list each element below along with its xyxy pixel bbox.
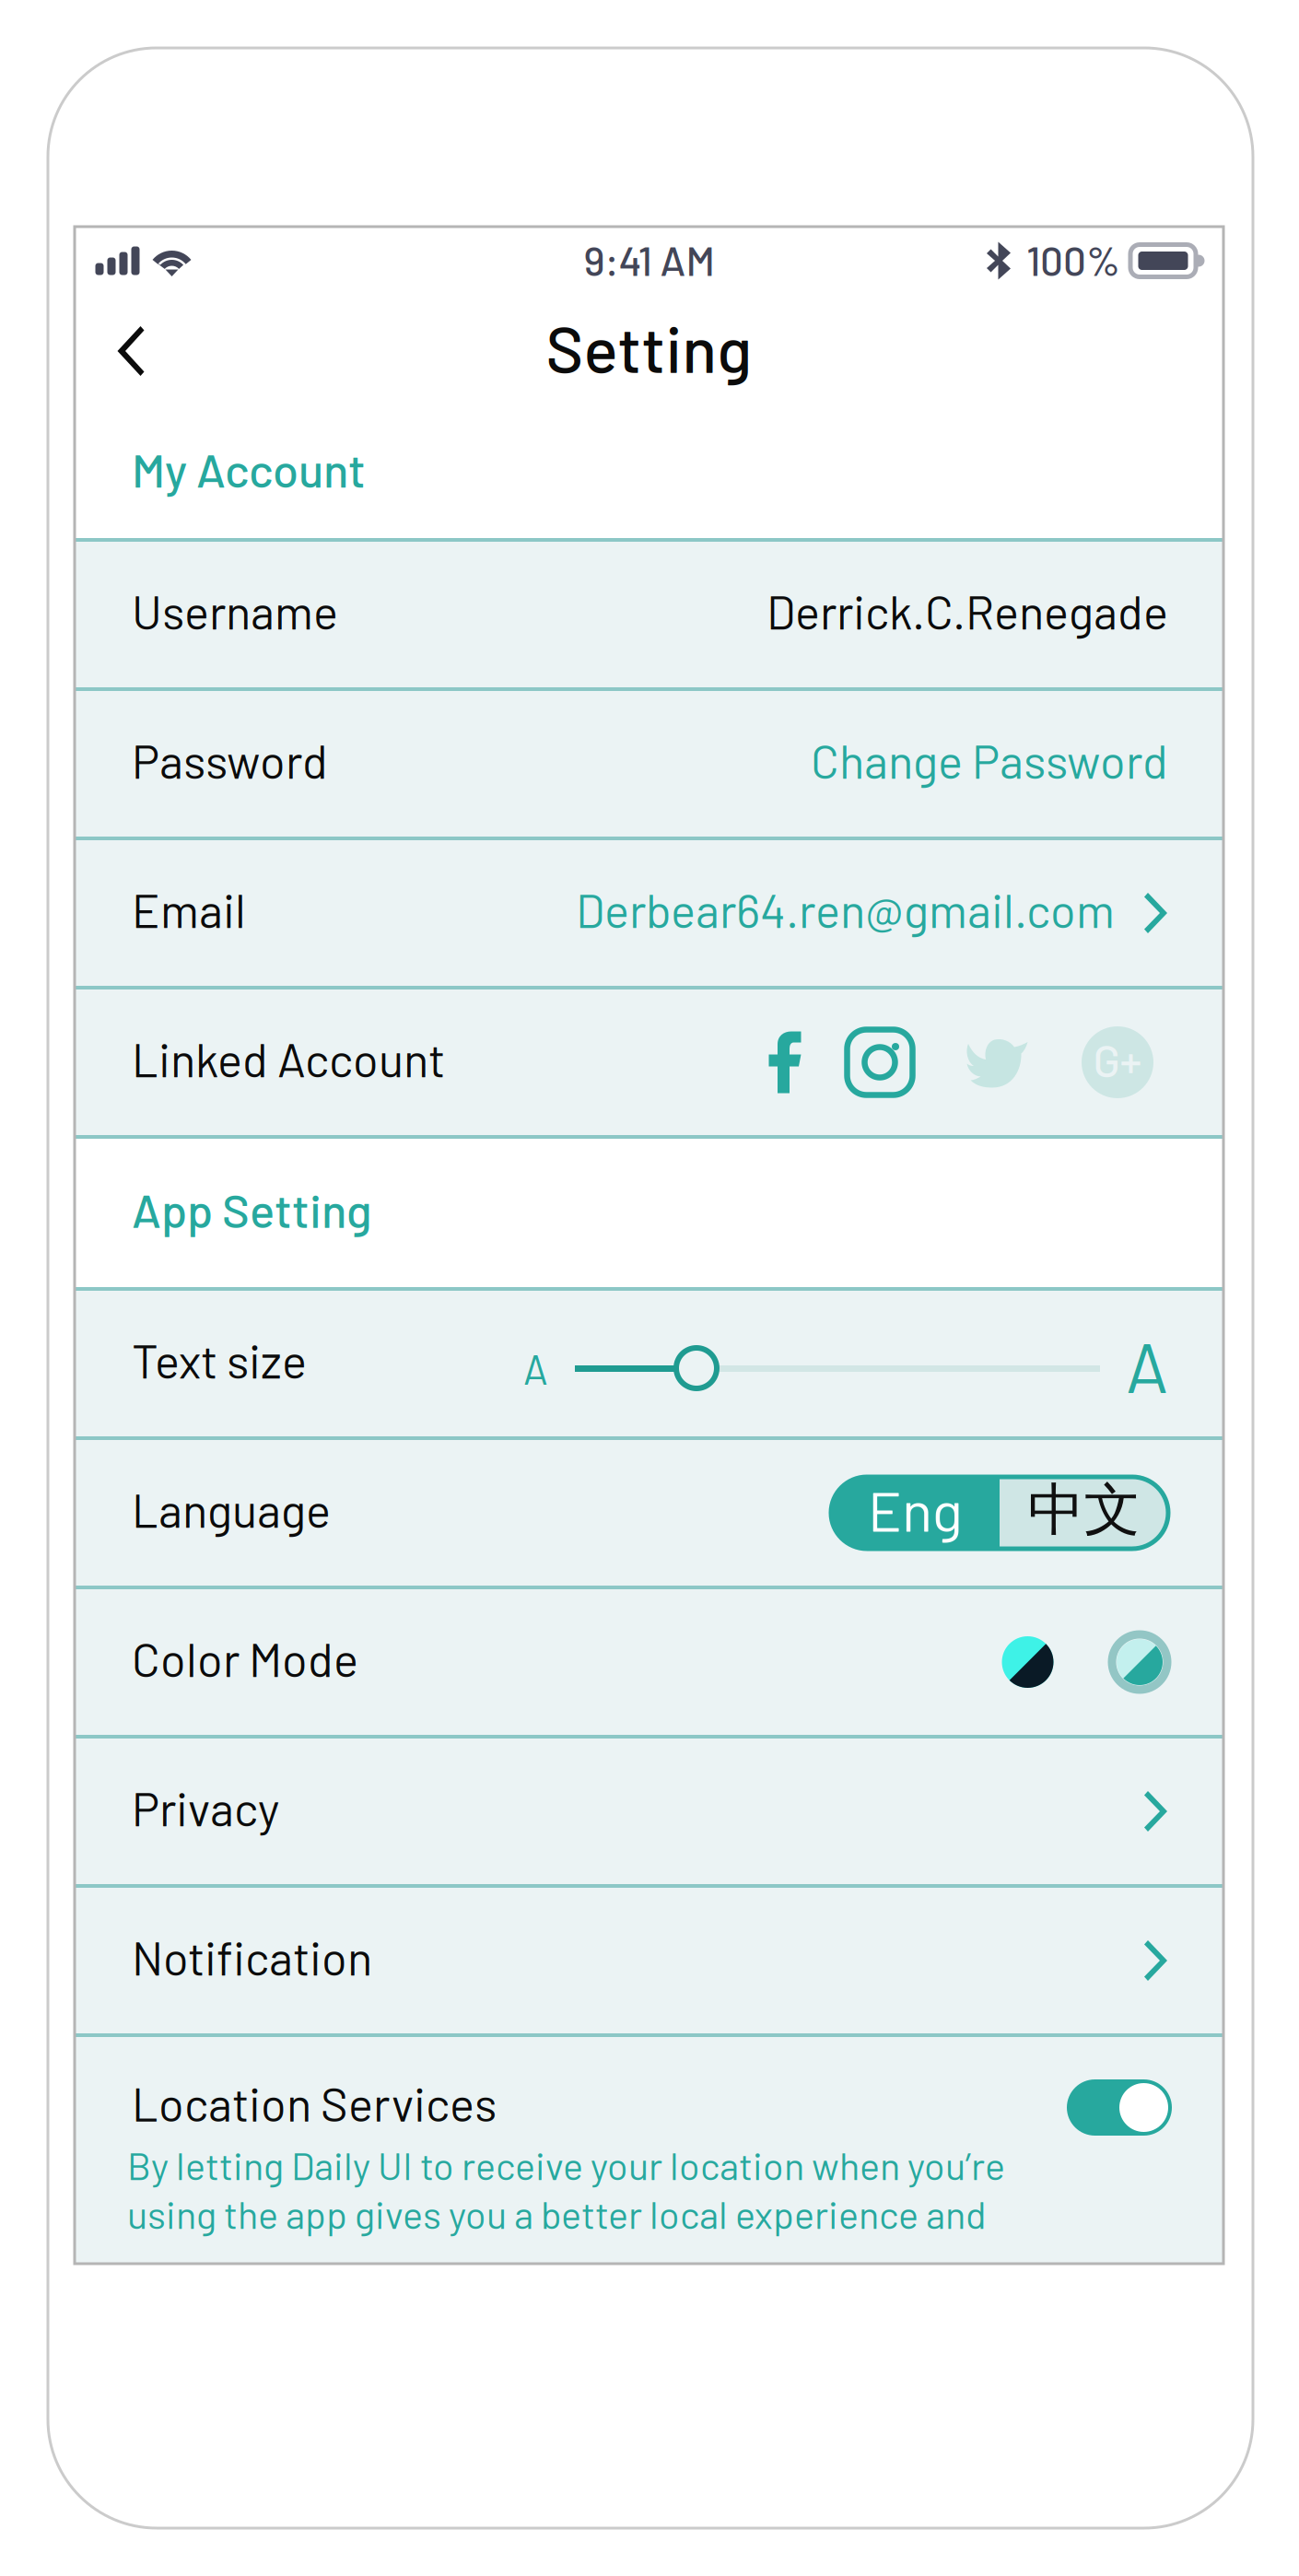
staticText: By letting Daily UI to receive your loca… [127, 2142, 1005, 2188]
button[interactable]: Language [831, 1477, 1168, 1549]
staticText: G+ [1093, 1033, 1142, 1086]
staticText: Derrick.C.Renegade [767, 583, 1168, 639]
button[interactable]: Instagram [833, 1007, 927, 1118]
staticText: 100% [1026, 235, 1120, 284]
button[interactable]: Google Plus [1067, 1007, 1168, 1118]
staticText: Linked Account [132, 1031, 445, 1087]
staticText: Eng [868, 1475, 963, 1543]
button[interactable]: Facebook [737, 1007, 833, 1118]
staticText: Location Services [132, 2075, 497, 2131]
button[interactable]: Change Password [811, 736, 1168, 792]
button[interactable]: Back [75, 300, 187, 402]
staticText: Derbear64.ren@gmail.com [576, 881, 1115, 937]
button[interactable]: Dark colour mode [944, 1607, 1111, 1717]
staticText: My Account [132, 441, 366, 497]
button[interactable]: Email [75, 840, 1223, 986]
button[interactable]: Privacy [75, 1739, 1223, 1884]
staticText: A [1126, 1323, 1168, 1407]
staticText: Text size [132, 1332, 307, 1388]
staticText: Language [132, 1481, 331, 1537]
staticText: 9:41 AM [584, 235, 714, 284]
staticText: Setting [546, 309, 752, 386]
button[interactable]: Location Services [1067, 2079, 1172, 2136]
button[interactable]: Notification [75, 1888, 1223, 2033]
staticText: using the app gives you a better local e… [127, 2191, 987, 2237]
staticText: 中文 [1028, 1474, 1140, 1546]
button[interactable]: Twitter [927, 1007, 1067, 1118]
staticText: Color Mode [132, 1630, 358, 1686]
staticText: Username [132, 583, 338, 639]
button[interactable]: Light colour mode [1111, 1607, 1168, 1717]
staticText: Privacy [132, 1780, 279, 1836]
staticText: Password [132, 732, 328, 788]
staticText: Change Password [811, 732, 1168, 788]
staticText: Email [132, 881, 246, 937]
staticText: App Setting [132, 1181, 372, 1237]
staticText: A [523, 1344, 548, 1393]
staticText: Notification [132, 1929, 372, 1985]
